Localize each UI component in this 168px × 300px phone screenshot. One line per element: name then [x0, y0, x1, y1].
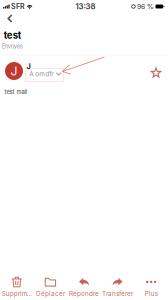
staticText: test mail — [4, 88, 26, 95]
staticText: Répondre — [69, 290, 99, 298]
staticText: À omdfr — [29, 70, 53, 78]
staticText: J — [10, 64, 17, 78]
button[interactable]: Plus — [134, 275, 168, 299]
button[interactable]: Back — [1, 10, 19, 26]
staticText: Envoyés — [2, 43, 23, 50]
staticText: Déplacer — [36, 290, 65, 298]
staticText: Plus — [145, 290, 158, 298]
button[interactable]: À omdfr — [29, 69, 62, 78]
staticText: Transférer — [102, 290, 133, 298]
staticText: 13:38 — [75, 2, 95, 11]
staticText: J — [26, 62, 30, 71]
button[interactable]: Flag — [148, 65, 164, 81]
staticText: 96 % — [137, 2, 154, 11]
staticText: SFR — [11, 2, 25, 11]
button[interactable]: Déplacer — [34, 275, 67, 299]
staticText: Supprim… — [2, 290, 32, 298]
button[interactable]: Transférer — [101, 275, 134, 299]
button[interactable]: Supprim… — [0, 275, 34, 299]
button[interactable]: Répondre — [67, 275, 101, 299]
staticText: test — [4, 29, 22, 41]
